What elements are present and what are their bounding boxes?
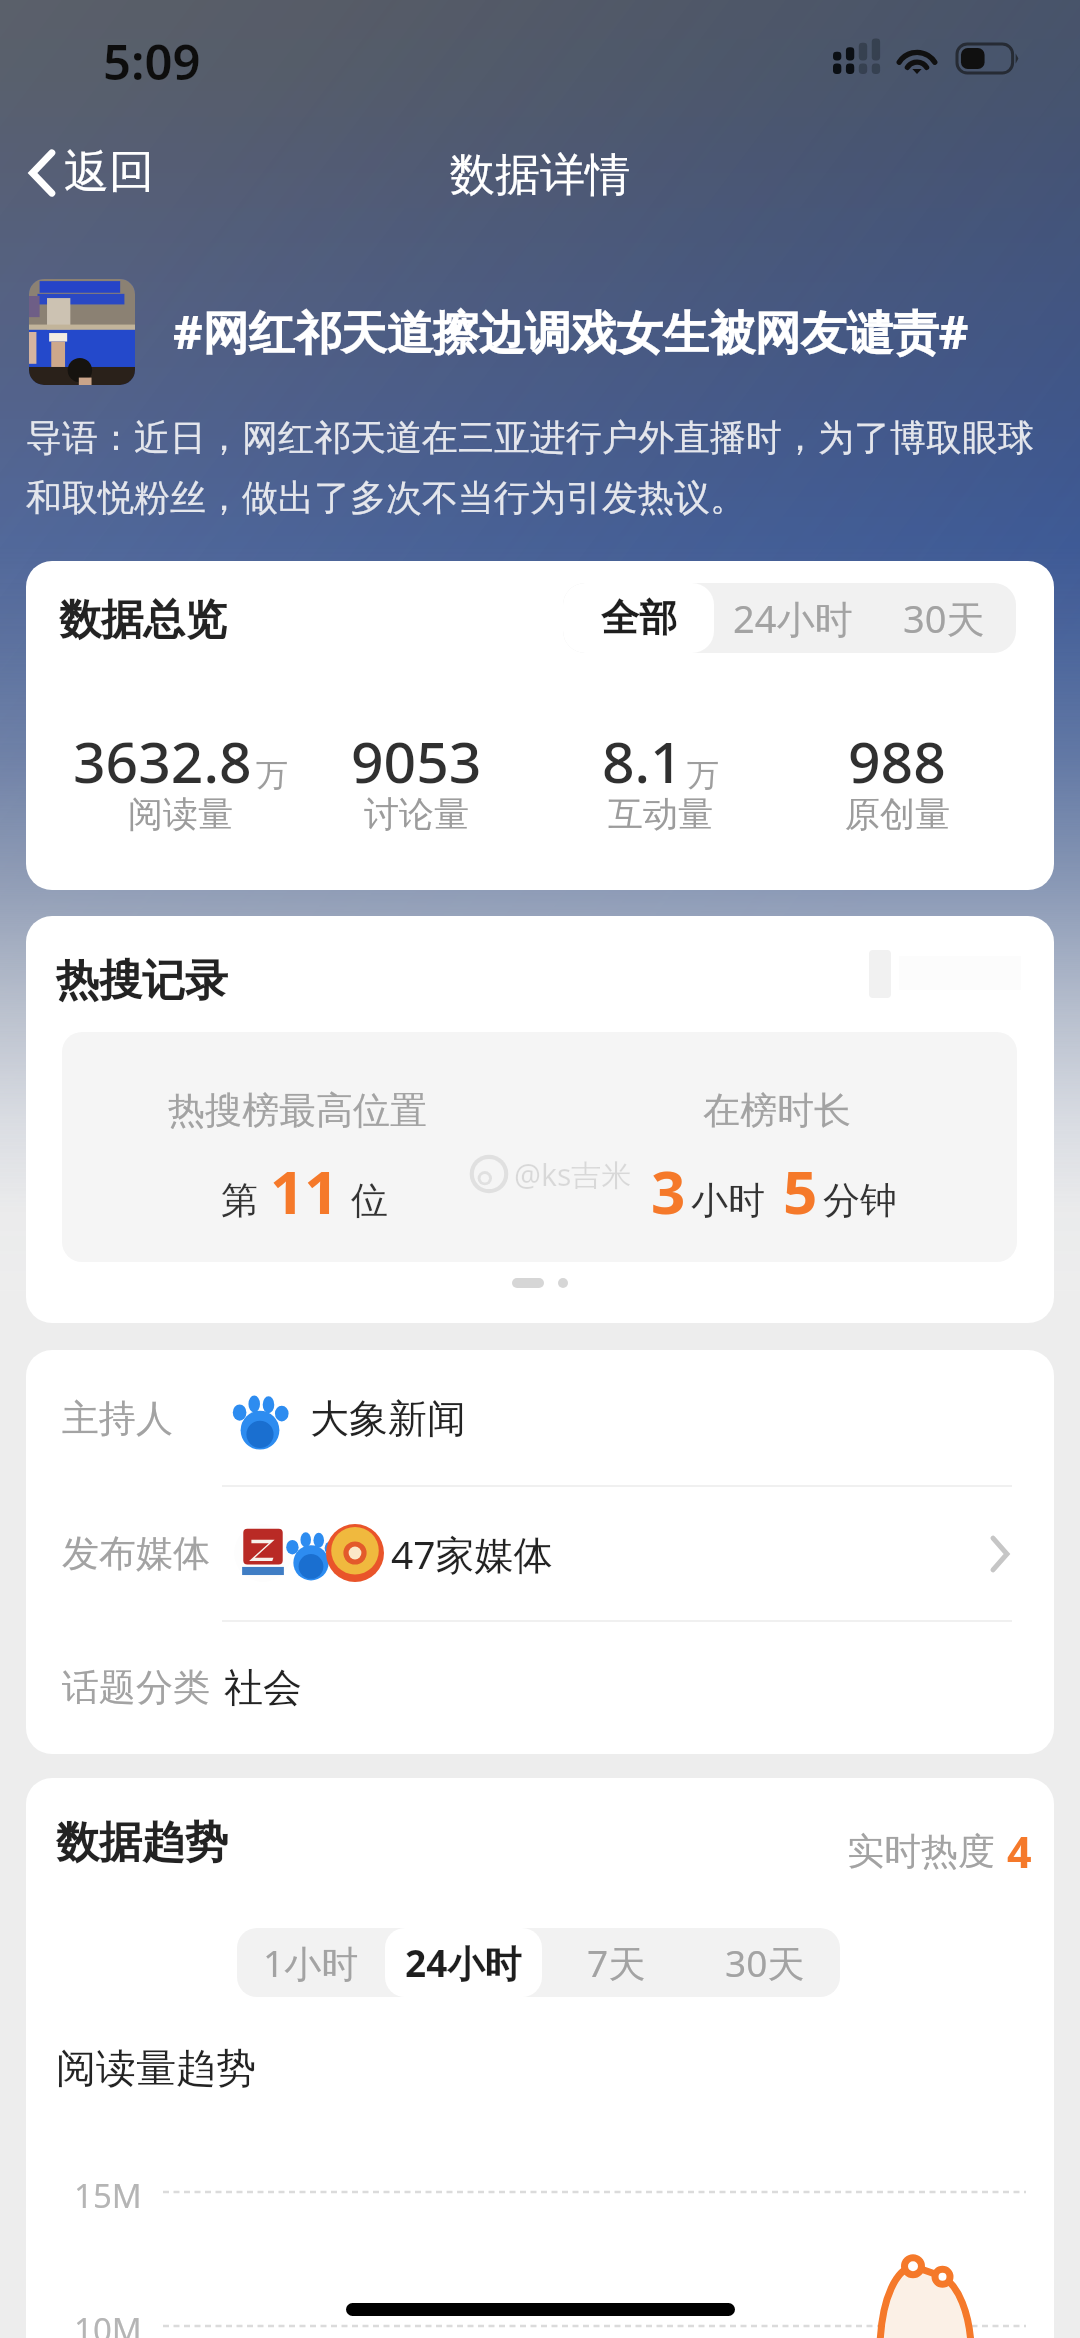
button[interactable]: 24小时 bbox=[714, 583, 872, 653]
staticText: 24小时 bbox=[405, 1937, 522, 1988]
staticText: 15M bbox=[74, 2173, 142, 2218]
staticText: 话题分类 bbox=[62, 1664, 210, 1711]
button[interactable]: 24小时 bbox=[385, 1928, 542, 1997]
staticText: 导语：近日，网红祁天道在三亚进行户外直播时，为了博取眼球 bbox=[26, 415, 1034, 460]
button[interactable]: 1小时 bbox=[237, 1928, 385, 1997]
staticText: 1小时 bbox=[263, 1937, 359, 1988]
staticText: 大象新闻 bbox=[310, 1394, 466, 1443]
staticText: 11 bbox=[270, 1150, 339, 1232]
staticText: 24小时 bbox=[733, 592, 853, 644]
staticText: 阅读量 bbox=[128, 792, 233, 836]
staticText: 5 bbox=[783, 1150, 818, 1232]
staticText: 分钟 bbox=[823, 1177, 897, 1224]
staticText: 万 bbox=[256, 755, 288, 795]
staticText: 原创量 bbox=[845, 792, 950, 836]
button[interactable]: 30天 bbox=[872, 583, 1016, 653]
staticText: 讨论量 bbox=[364, 792, 469, 836]
staticText: 5:09 bbox=[103, 28, 201, 95]
staticText: 8.1 bbox=[602, 722, 683, 800]
staticText: 返回 bbox=[64, 144, 154, 201]
staticText: 4 bbox=[1007, 1822, 1032, 1881]
staticText: 全部 bbox=[601, 594, 677, 642]
staticText: 30天 bbox=[725, 1937, 805, 1988]
staticText: 数据趋势 bbox=[56, 1816, 228, 1870]
button[interactable]: 全部 bbox=[563, 583, 714, 653]
staticText: 主持人 bbox=[62, 1395, 173, 1442]
staticText: 数据详情 bbox=[450, 147, 630, 204]
staticText: 10M bbox=[74, 2307, 142, 2338]
button[interactable]: 7天 bbox=[542, 1928, 690, 1997]
staticText: 热搜记录 bbox=[56, 954, 228, 1008]
button[interactable]: 发布媒体 bbox=[26, 1486, 1054, 1621]
staticText: 位 bbox=[351, 1177, 388, 1224]
staticText: 数据总览 bbox=[59, 594, 227, 647]
staticText: 实时热度 bbox=[847, 1828, 995, 1875]
staticText: 互动量 bbox=[608, 792, 713, 836]
staticText: 9053 bbox=[351, 722, 482, 800]
staticText: 发布媒体 bbox=[62, 1530, 210, 1577]
staticText: 阅读量趋势 bbox=[56, 2043, 256, 2093]
staticText: 和取悦粉丝，做出了多次不当行为引发热议。 bbox=[26, 475, 746, 520]
staticText: #网红祁天道擦边调戏女生被网友谴责# bbox=[173, 300, 969, 363]
staticText: 小时 bbox=[691, 1177, 765, 1224]
button[interactable]: 30天 bbox=[690, 1928, 840, 1997]
staticText: 3632.8 bbox=[73, 722, 252, 800]
staticText: 在榜时长 bbox=[703, 1087, 851, 1134]
staticText: 万 bbox=[687, 755, 719, 795]
staticText: 30天 bbox=[903, 592, 985, 644]
staticText: 988 bbox=[848, 722, 946, 800]
staticText: 社会 bbox=[224, 1663, 302, 1712]
button[interactable]: 返回 bbox=[0, 132, 172, 213]
staticText: 第 bbox=[221, 1177, 258, 1224]
staticText: 3 bbox=[651, 1150, 686, 1232]
staticText: 47家媒体 bbox=[391, 1527, 553, 1580]
staticText: 热搜榜最高位置 bbox=[168, 1087, 427, 1134]
staticText: @ks吉米 bbox=[514, 1154, 632, 1195]
staticText: 7天 bbox=[587, 1937, 646, 1988]
